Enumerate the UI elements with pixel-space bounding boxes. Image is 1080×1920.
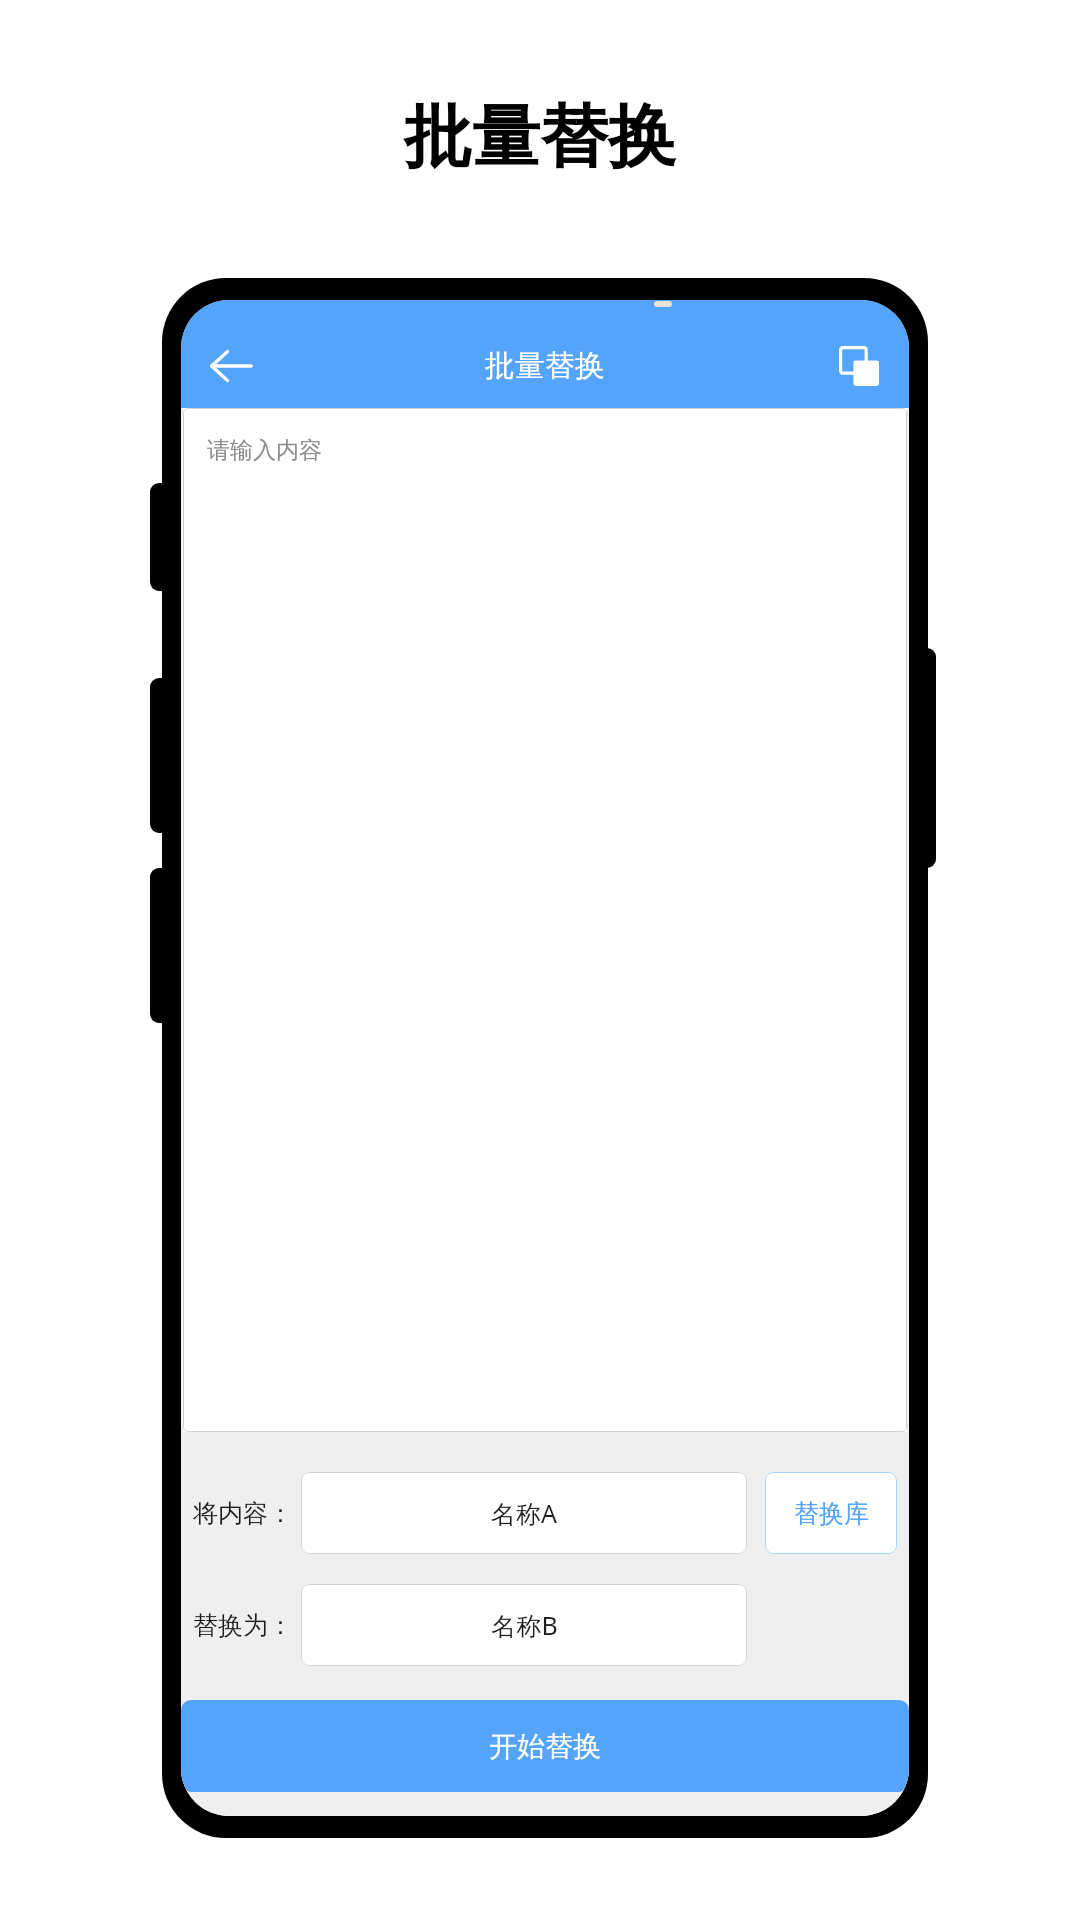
button[interactable]: 开始替换 [181,1700,909,1792]
staticText: 名称B [491,1608,558,1642]
staticText: 名称A [491,1496,557,1530]
button[interactable]: Back [193,328,269,404]
staticText: 开始替换 [489,1729,601,1764]
staticText: 批量替换 [404,95,676,181]
staticText: 将内容： [193,1498,293,1529]
button[interactable]: Copy [823,330,895,402]
button[interactable]: 名称B [301,1584,747,1666]
staticText: 替换为： [193,1610,293,1641]
button[interactable]: 名称A [301,1472,747,1554]
staticText: 批量替换 [485,347,605,385]
staticText: 请输入内容 [207,436,322,465]
button[interactable]: 请输入内容 [183,408,907,1432]
button[interactable]: 替换库 [765,1472,897,1554]
staticText: 替换库 [794,1498,869,1529]
